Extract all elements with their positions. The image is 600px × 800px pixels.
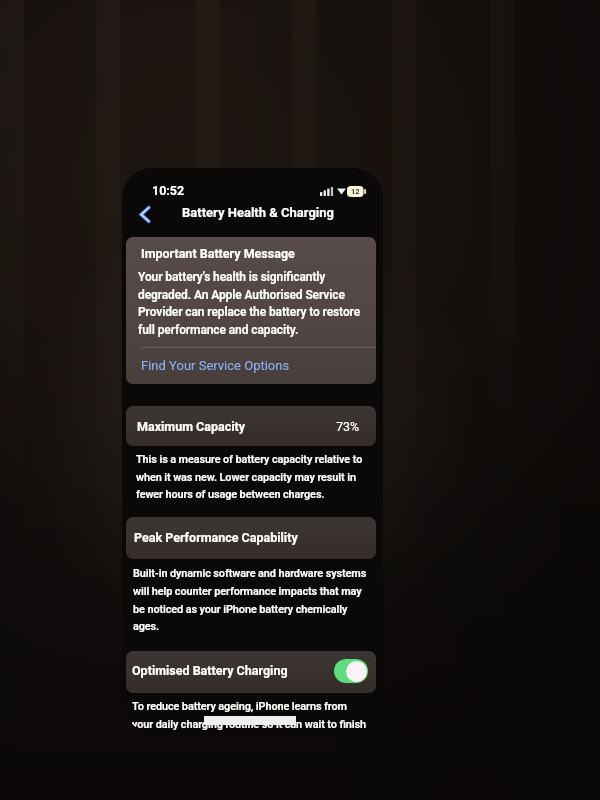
staticText: full performance and capacity. bbox=[138, 323, 299, 337]
staticText: Battery Health & Charging bbox=[182, 205, 334, 220]
staticText: your daily charging routine so it can wa… bbox=[132, 718, 366, 731]
button[interactable] bbox=[126, 406, 376, 446]
button[interactable]: Back bbox=[133, 203, 157, 225]
staticText: This is a measure of battery capacity re… bbox=[136, 453, 363, 466]
staticText: 12 bbox=[351, 187, 360, 196]
button[interactable] bbox=[126, 517, 376, 559]
staticText: when it was new. Lower capacity may resu… bbox=[136, 471, 356, 484]
staticText: ages. bbox=[133, 620, 160, 633]
staticText: Provider can replace the battery to rest… bbox=[138, 305, 361, 319]
staticText: will help counter performance impacts th… bbox=[133, 585, 362, 598]
staticText: Peak Performance Capability bbox=[134, 530, 298, 545]
staticText: Important Battery Message bbox=[141, 246, 295, 261]
staticText: Maximum Capacity bbox=[137, 419, 245, 434]
staticText: Built-in dynamic software and hardware s… bbox=[133, 567, 367, 580]
staticText: Your battery's health is significantly bbox=[138, 270, 326, 284]
staticText: fewer hours of usage between charges. bbox=[136, 488, 325, 501]
button[interactable]: Optimised Battery Charging bbox=[334, 659, 368, 683]
button[interactable]: Find Your Service Options bbox=[126, 348, 376, 384]
staticText: To reduce battery ageing, iPhone learns … bbox=[132, 700, 347, 713]
staticText: 73% bbox=[336, 419, 360, 434]
staticText: degraded. An Apple Authorised Service bbox=[138, 288, 345, 302]
button[interactable] bbox=[126, 651, 376, 693]
staticText: 10:52 bbox=[152, 183, 185, 198]
staticText: Optimised Battery Charging bbox=[132, 663, 288, 678]
staticText: be noticed as your iPhone battery chemic… bbox=[133, 603, 348, 616]
staticText: Find Your Service Options bbox=[141, 358, 290, 373]
